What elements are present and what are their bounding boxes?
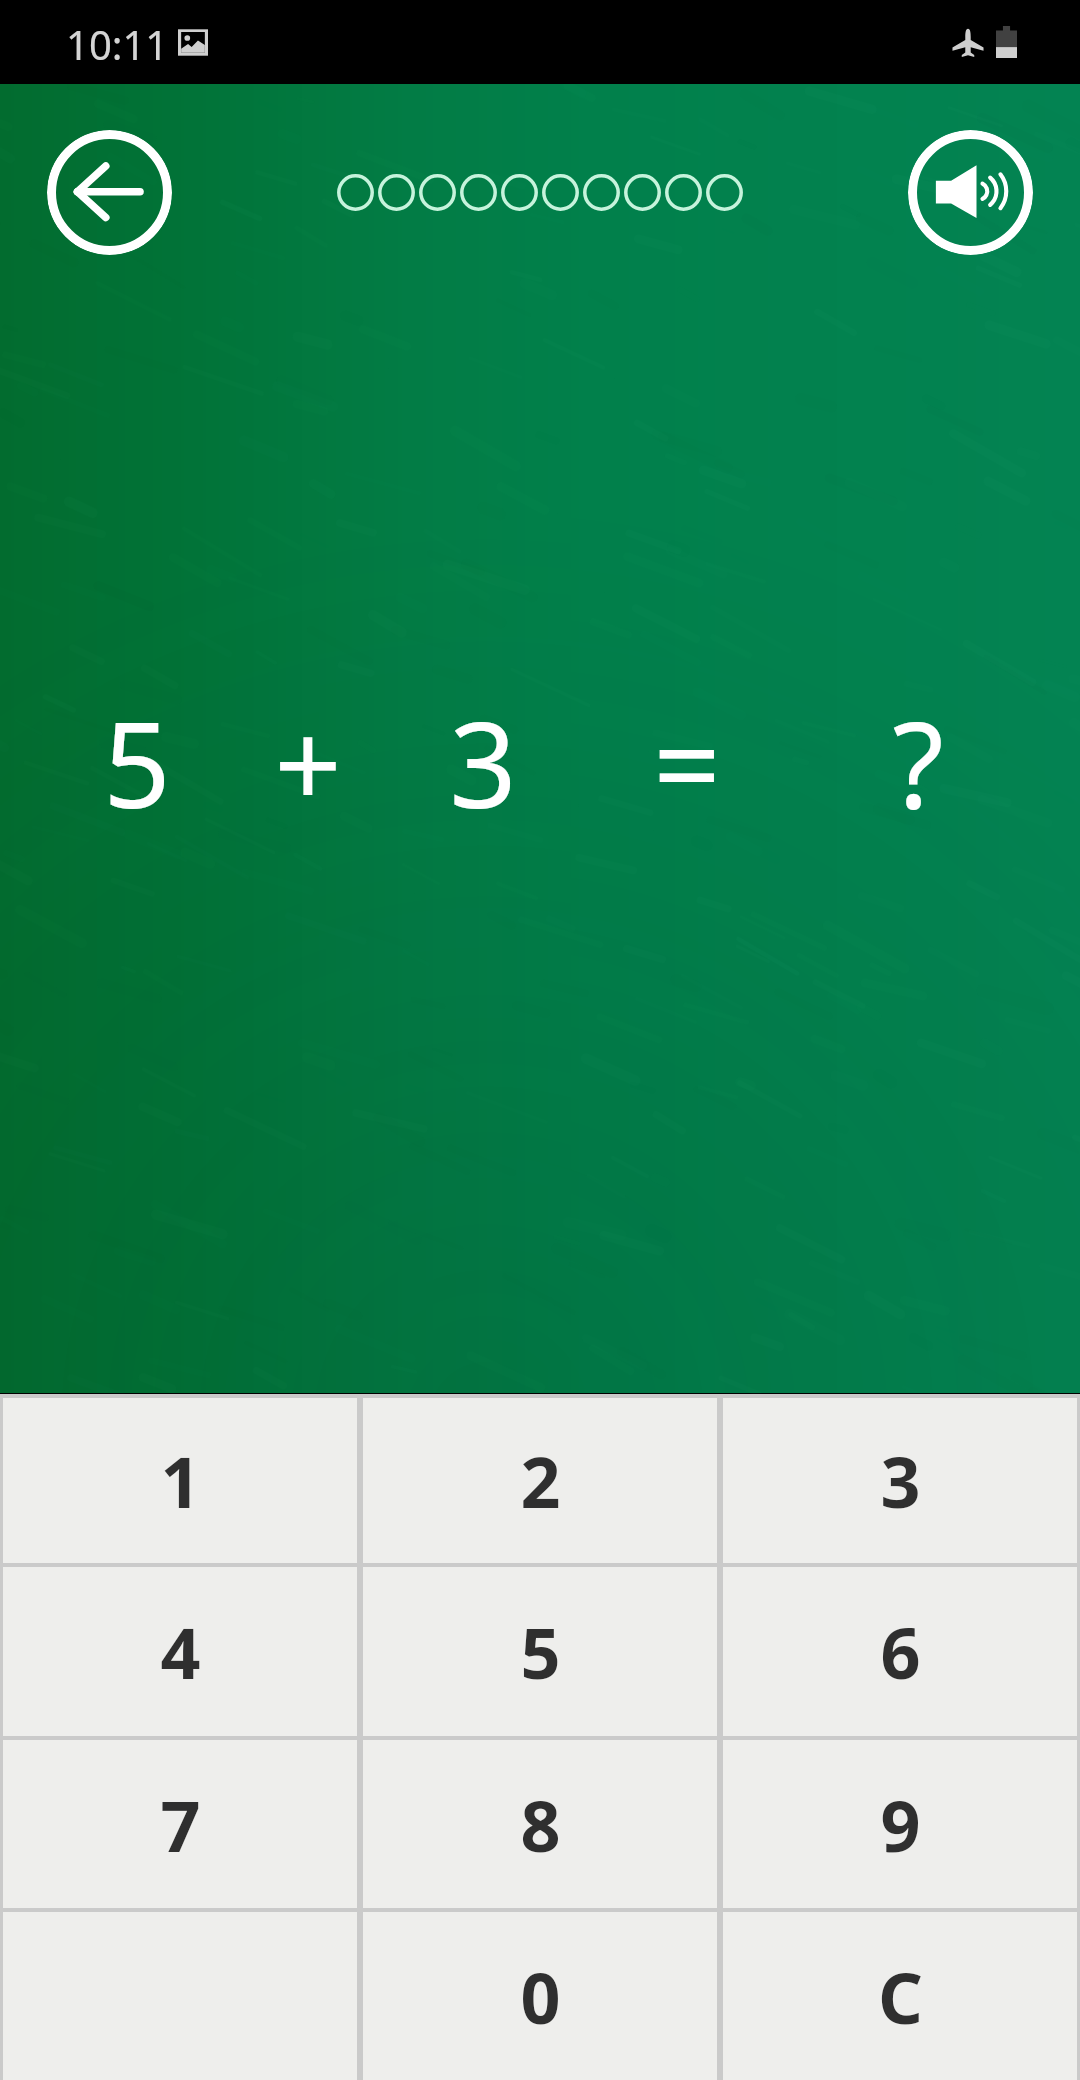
staticText: 10:11: [66, 17, 169, 71]
button[interactable]: 4: [3, 1567, 357, 1736]
button[interactable]: Back: [47, 130, 172, 255]
staticText: 5: [103, 682, 171, 842]
staticText: 1: [160, 1433, 201, 1528]
staticText: +: [274, 682, 342, 842]
staticText: 5: [520, 1604, 561, 1699]
staticText: C: [878, 1949, 923, 2044]
button[interactable]: 9: [723, 1740, 1077, 1908]
button[interactable]: 5: [363, 1567, 717, 1736]
button[interactable]: 3: [723, 1398, 1077, 1563]
button[interactable]: 0: [363, 1912, 717, 2080]
button[interactable]: 7: [3, 1740, 357, 1908]
staticText: 3: [880, 1433, 921, 1528]
staticText: 7: [160, 1777, 201, 1872]
staticText: ?: [892, 682, 944, 842]
staticText: 3: [449, 682, 517, 842]
staticText: 8: [520, 1777, 561, 1872]
button[interactable]: C: [723, 1912, 1077, 2080]
button[interactable]: 8: [363, 1740, 717, 1908]
button[interactable]: 2: [363, 1398, 717, 1563]
button[interactable]: 6: [723, 1567, 1077, 1736]
staticText: 9: [880, 1777, 921, 1872]
staticText: =: [653, 682, 721, 842]
staticText: 4: [160, 1604, 201, 1699]
staticText: 0: [520, 1949, 561, 2044]
button[interactable]: 1: [3, 1398, 357, 1563]
staticText: 2: [520, 1433, 561, 1528]
staticText: 6: [880, 1604, 921, 1699]
button[interactable]: Sound: [908, 130, 1033, 255]
